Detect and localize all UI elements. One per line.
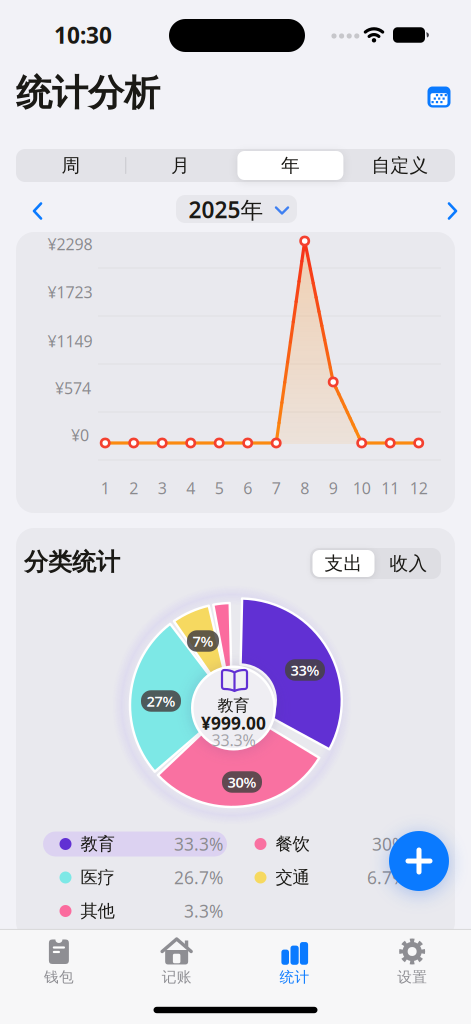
staticText: 年 (281, 154, 300, 177)
staticText: 10:30 (54, 20, 112, 50)
staticText: 12 (410, 477, 428, 499)
staticText: 30% (372, 832, 406, 855)
button[interactable]: 收入 (376, 548, 440, 579)
staticText: ¥999.00 (201, 711, 266, 734)
staticText: 9 (329, 477, 338, 499)
button[interactable]: 年 (236, 149, 344, 182)
staticText: 其他 (80, 900, 114, 922)
staticText: 7% (192, 631, 213, 651)
button[interactable]: 自定义 (346, 149, 454, 182)
staticText: 交通 (275, 867, 309, 888)
button[interactable]: 选择日期 (419, 78, 459, 116)
staticText: 分类统计 (24, 547, 120, 577)
staticText: 10 (353, 477, 371, 499)
staticText: ¥1723 (47, 281, 92, 303)
staticText: 27% (146, 691, 175, 711)
staticText: 统计 (279, 968, 309, 986)
button[interactable]: 记一笔 (389, 831, 449, 891)
staticText: 5 (215, 477, 224, 499)
staticText: 钱包 (44, 968, 74, 986)
button[interactable]: 设置 (362, 933, 462, 991)
button[interactable]: 2025年 (176, 195, 297, 223)
staticText: 月 (171, 154, 190, 177)
staticText: ¥2298 (47, 233, 92, 255)
button[interactable]: 钱包 (9, 933, 109, 991)
button[interactable]: 餐饮 (254, 833, 309, 855)
staticText: 周 (61, 154, 80, 177)
staticText: 设置 (397, 968, 427, 986)
button[interactable]: 下一年 (433, 193, 471, 228)
button[interactable]: 上一年 (17, 193, 57, 228)
staticText: 3.3% (184, 899, 223, 922)
staticText: 记账 (162, 968, 192, 986)
staticText: 餐饮 (275, 833, 309, 855)
button[interactable]: 支出 (311, 548, 375, 579)
staticText: 33.3% (174, 832, 223, 855)
button[interactable]: 记账 (127, 933, 227, 991)
staticText: 统计分析 (16, 71, 160, 115)
staticText: 2025年 (188, 194, 263, 224)
staticText: 1 (101, 477, 110, 499)
staticText: 教育 (217, 696, 249, 715)
button[interactable]: 医疗 (59, 867, 114, 888)
staticText: 8 (300, 477, 309, 499)
staticText: 30% (227, 772, 256, 792)
staticText: ¥574 (55, 377, 91, 399)
staticText: 6.7% (367, 866, 406, 889)
staticText: ¥1149 (47, 330, 92, 352)
staticText: 4 (186, 477, 195, 499)
button[interactable]: 教育 (59, 833, 114, 855)
button[interactable]: 周 (17, 149, 125, 182)
staticText: 自定义 (372, 154, 429, 177)
staticText: 教育 (80, 833, 114, 855)
staticText: 2 (129, 477, 138, 499)
staticText: 医疗 (80, 867, 114, 888)
staticText: 11 (381, 477, 399, 499)
button[interactable]: 统计 (244, 933, 344, 991)
staticText: 33% (290, 660, 319, 680)
staticText: ¥0 (71, 424, 89, 446)
staticText: 收入 (389, 552, 427, 575)
button[interactable]: 其他 (59, 900, 114, 922)
button[interactable]: 月 (127, 149, 235, 182)
staticText: 3 (158, 477, 167, 499)
staticText: 6 (243, 477, 252, 499)
staticText: 支出 (324, 552, 362, 575)
staticText: 7 (272, 477, 281, 499)
staticText: 33.3% (211, 729, 255, 751)
button[interactable]: 交通 (254, 867, 309, 888)
staticText: 26.7% (174, 866, 223, 889)
